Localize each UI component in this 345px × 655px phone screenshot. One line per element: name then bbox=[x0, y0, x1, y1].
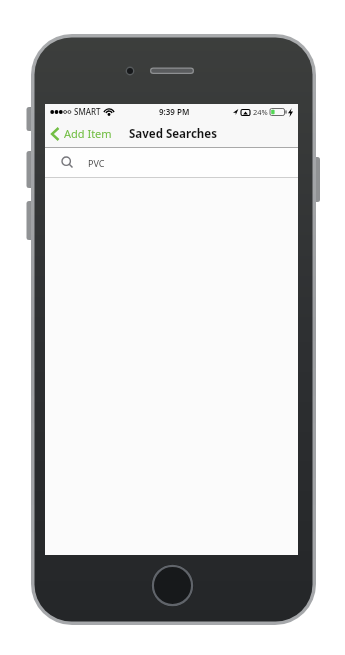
button[interactable]: PVC bbox=[45, 148, 298, 177]
button[interactable]: Add Item bbox=[50, 126, 112, 141]
staticText: Saved Searches bbox=[129, 126, 217, 142]
staticText: PVC bbox=[88, 157, 105, 169]
staticText: 24% bbox=[253, 107, 268, 117]
staticText: SMART bbox=[74, 106, 101, 117]
staticText: Add Item bbox=[64, 126, 112, 141]
staticText: 9:39 PM bbox=[159, 106, 190, 117]
